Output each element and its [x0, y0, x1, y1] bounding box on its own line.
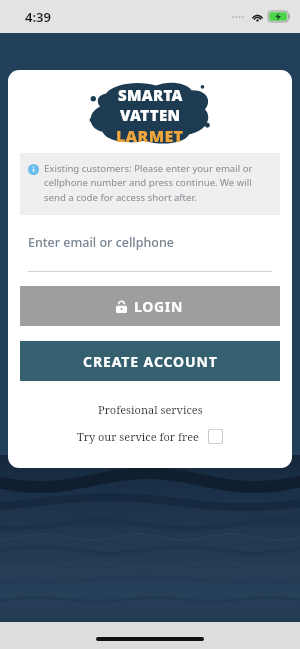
staticText: LARMET: [116, 125, 184, 145]
staticText: Existing customers: Please enter your em…: [44, 162, 270, 204]
staticText: 4:39: [25, 8, 51, 26]
staticText: SMARTA: [118, 85, 183, 105]
button[interactable]: CREATE ACCOUNT: [20, 341, 280, 381]
staticText: CREATE ACCOUNT: [83, 352, 218, 371]
button[interactable]: Try our service for free checkbox: [208, 429, 223, 444]
button[interactable]: Try our service for free: [8, 429, 292, 444]
staticText: Profesional services: [98, 402, 203, 417]
staticText: Enter email or cellphone: [28, 234, 174, 251]
staticText: VATTEN: [120, 105, 181, 125]
staticText: Try our service for free: [77, 429, 199, 444]
staticText: LOGIN: [134, 297, 184, 316]
button[interactable]: LOGIN: [20, 286, 280, 326]
